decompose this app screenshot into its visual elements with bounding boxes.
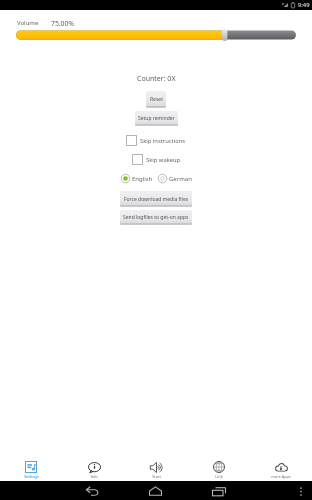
button[interactable]: Skip wakeup [132, 154, 181, 165]
button[interactable]: Setup reminder [135, 111, 178, 126]
staticText: Volume [17, 19, 39, 27]
button[interactable]: Settings [0, 461, 62, 479]
staticText: English [132, 175, 153, 183]
button[interactable]: Volume slider [0, 29, 312, 41]
staticText: Settings [24, 474, 39, 479]
staticText: 9:49 [298, 1, 310, 9]
staticText: German [169, 175, 192, 183]
staticText: Setup reminder [138, 115, 175, 122]
staticText: Skip instructions [140, 137, 186, 145]
button[interactable]: Link [188, 461, 250, 479]
staticText: Force download media files [124, 196, 189, 203]
staticText: Reset [150, 96, 163, 103]
button[interactable]: Start [125, 461, 187, 479]
button[interactable]: Reset [146, 91, 166, 108]
button[interactable]: Force download media files [120, 191, 192, 207]
staticText: Info [90, 474, 98, 479]
button[interactable]: Info [63, 461, 125, 479]
staticText: Skip wakeup [146, 156, 181, 164]
button[interactable]: German [157, 173, 192, 184]
staticText: Start [152, 474, 161, 479]
staticText: 75.00% [51, 19, 75, 28]
button[interactable]: Send logfiles to get-on apps [120, 210, 192, 225]
staticText: more Apps [271, 474, 291, 479]
button[interactable]: English [120, 173, 153, 184]
staticText: Send logfiles to get-on apps [123, 214, 189, 221]
staticText: Counter: 0X [137, 74, 176, 84]
button[interactable]: Skip instructions [126, 135, 186, 146]
staticText: Link [215, 474, 223, 479]
button[interactable]: more Apps [250, 461, 312, 479]
